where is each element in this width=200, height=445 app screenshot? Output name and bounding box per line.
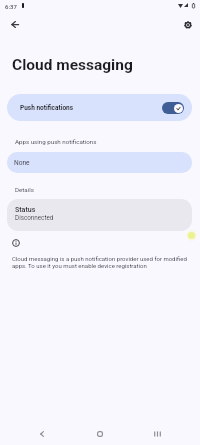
staticText: None	[14, 159, 30, 167]
staticText: Details	[15, 186, 34, 193]
button[interactable]: Push notifications	[7, 94, 192, 121]
staticText: Cloud messaging	[12, 56, 133, 74]
button[interactable]: None	[7, 152, 192, 173]
button[interactable]: Recents	[144, 421, 170, 445]
staticText: Cloud messaging is a push notification p…	[12, 255, 189, 270]
button[interactable]: Push notifications toggle	[162, 102, 184, 114]
staticText: 6:37	[5, 3, 17, 10]
button[interactable]: Settings	[179, 16, 196, 33]
staticText: Status	[15, 206, 36, 214]
button[interactable]: Back	[29, 421, 55, 445]
staticText: Push notifications	[20, 104, 74, 112]
staticText: Disconnected	[15, 214, 54, 221]
button[interactable]: Home	[87, 421, 113, 445]
button[interactable]: Back	[6, 16, 23, 33]
staticText: Apps using push notifications	[15, 138, 97, 145]
button[interactable]: Status	[7, 199, 192, 231]
